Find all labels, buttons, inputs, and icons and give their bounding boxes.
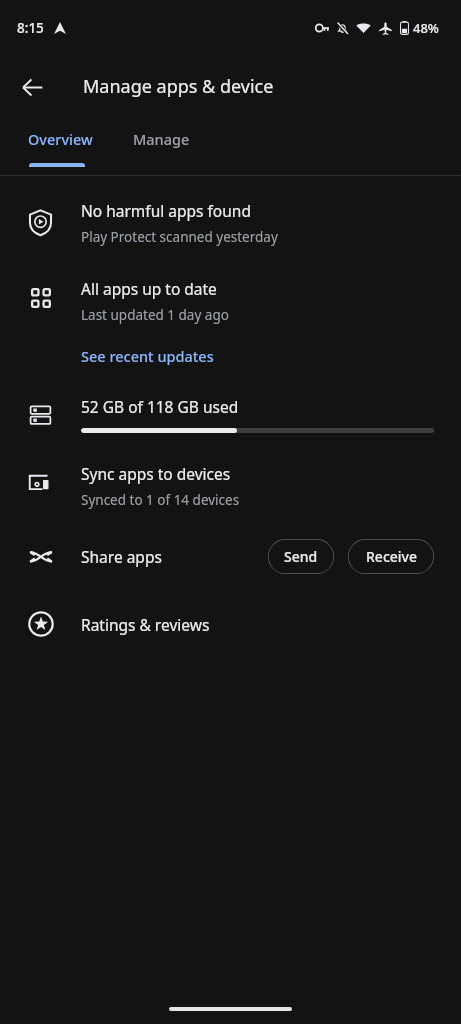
staticText: Ratings & reviews — [81, 614, 210, 635]
staticText: All apps up to date — [81, 278, 217, 299]
button[interactable]: Manage — [123, 118, 200, 160]
staticText: Synced to 1 of 14 devices — [81, 491, 240, 509]
staticText: Overview — [28, 129, 93, 149]
staticText: Share apps — [81, 546, 162, 567]
button[interactable]: 52 GB of 118 GB used — [0, 396, 461, 433]
button[interactable]: Send — [268, 539, 334, 574]
staticText: 8:15 — [17, 19, 44, 37]
staticText: Sync apps to devices — [81, 463, 231, 484]
staticText: See recent updates — [81, 346, 214, 366]
button[interactable]: All apps up to date — [0, 278, 461, 366]
staticText: No harmful apps found — [81, 200, 251, 221]
staticText: Receive — [366, 547, 417, 566]
button[interactable]: Ratings & reviews — [0, 603, 461, 645]
staticText: Play Protect scanned yesterday — [81, 228, 278, 246]
staticText: Manage apps & device — [83, 74, 274, 99]
button[interactable]: Overview — [18, 118, 103, 160]
staticText: 52 GB of 118 GB used — [81, 396, 239, 417]
button[interactable]: See recent updates — [81, 346, 214, 366]
button[interactable]: Sync apps to devices — [0, 463, 461, 509]
staticText: Send — [284, 547, 318, 566]
button[interactable]: No harmful apps found — [0, 200, 461, 246]
staticText: Last updated 1 day ago — [81, 306, 229, 324]
staticText: Manage — [133, 129, 190, 149]
button[interactable]: Receive — [348, 539, 434, 574]
button[interactable]: Back — [12, 67, 52, 107]
staticText: 48% — [413, 19, 439, 37]
